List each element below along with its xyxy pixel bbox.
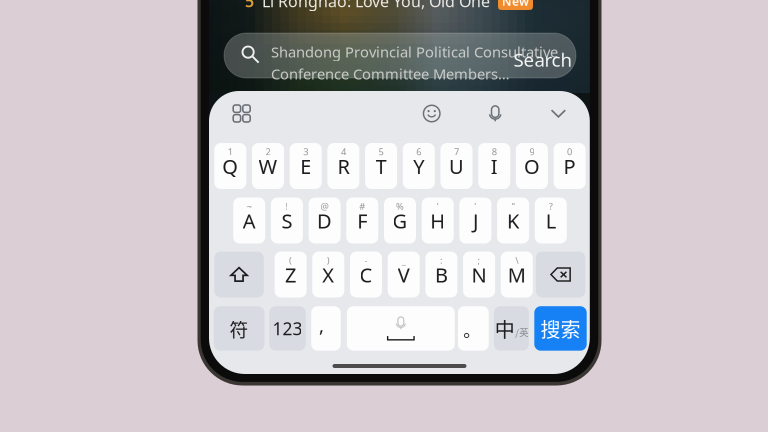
staticText: 2 — [265, 145, 270, 158]
button[interactable]: - — [350, 251, 382, 297]
button[interactable]: Space — [347, 306, 455, 351]
staticText: J — [473, 207, 478, 234]
staticText: ? — [549, 200, 553, 212]
staticText: _ — [402, 254, 406, 266]
staticText: G — [392, 207, 407, 234]
staticText: # — [359, 200, 365, 212]
button[interactable]: _ — [388, 251, 420, 297]
staticText: S — [281, 207, 292, 234]
staticText: C — [359, 261, 372, 288]
button[interactable]: 8 — [478, 143, 510, 189]
button[interactable]: 9 — [516, 143, 548, 189]
button[interactable]: ) — [312, 251, 344, 297]
staticText: Z — [285, 261, 296, 288]
button[interactable]: ~ — [233, 197, 265, 243]
button[interactable]: ‘ — [422, 197, 454, 243]
staticText: % — [396, 200, 404, 212]
staticText: 123 — [272, 317, 302, 340]
button[interactable]: % — [384, 197, 416, 243]
staticText: 5 — [245, 0, 254, 12]
staticText: 1 — [228, 145, 233, 158]
button[interactable]: 1 — [214, 143, 246, 189]
button[interactable]: “ — [497, 197, 529, 243]
button[interactable]: Hide keyboard — [543, 98, 573, 128]
staticText: ; — [478, 254, 481, 266]
staticText: A — [243, 207, 256, 234]
button[interactable]: Delete — [536, 251, 585, 297]
staticText: B — [435, 261, 448, 288]
staticText: Shandong Provincial Political Consultati… — [271, 42, 558, 61]
button[interactable]: 0 — [554, 143, 586, 189]
staticText: /英 — [515, 325, 528, 339]
button[interactable]: Numbers — [269, 306, 306, 351]
staticText: D — [317, 207, 332, 234]
staticText: 搜索 — [540, 314, 580, 343]
button[interactable]: ! — [271, 197, 303, 243]
button[interactable]: 4 — [327, 143, 359, 189]
button[interactable]: Chinese/English — [494, 306, 529, 351]
button[interactable]: ’ — [459, 197, 491, 243]
staticText: Search — [513, 47, 572, 72]
staticText: U — [449, 153, 464, 180]
staticText: P — [564, 153, 576, 180]
staticText: - — [364, 254, 367, 266]
staticText: V — [398, 261, 410, 288]
staticText: New — [502, 0, 529, 9]
staticText: 5 — [379, 145, 384, 158]
staticText: ( — [289, 254, 292, 266]
staticText: X — [322, 261, 334, 288]
staticText: @ — [321, 200, 329, 212]
staticText: ~ — [247, 200, 252, 212]
staticText: ) — [327, 254, 330, 266]
staticText: T — [376, 153, 387, 180]
staticText: ‘ — [437, 200, 439, 212]
staticText: Li Ronghao: Love You, Old One — [262, 0, 490, 12]
button[interactable]: Comma — [311, 306, 341, 351]
staticText: Conference Committee Members… — [271, 64, 510, 83]
staticText: , — [319, 313, 324, 338]
button[interactable]: \ — [501, 251, 533, 297]
staticText: 9 — [529, 145, 534, 158]
staticText: E — [300, 153, 311, 180]
button[interactable]: Period — [458, 306, 489, 351]
staticText: ! — [285, 200, 288, 212]
button[interactable]: : — [425, 251, 457, 297]
staticText: 3 — [303, 145, 308, 158]
staticText: 8 — [492, 145, 497, 158]
staticText: “ — [512, 200, 515, 212]
button[interactable]: Dictate — [480, 98, 510, 128]
staticText: N — [472, 261, 487, 288]
button[interactable]: 5 — [365, 143, 397, 189]
staticText: L — [546, 207, 556, 234]
staticText: 6 — [416, 145, 421, 158]
button[interactable]: Symbols — [214, 306, 264, 351]
staticText: : — [440, 254, 443, 266]
staticText: W — [258, 153, 277, 180]
staticText: O — [524, 153, 540, 180]
button[interactable]: Emoji — [417, 98, 447, 128]
staticText: 符 — [230, 315, 249, 342]
staticText: R — [337, 153, 349, 180]
button[interactable]: 6 — [403, 143, 435, 189]
button[interactable]: ? — [535, 197, 567, 243]
staticText: K — [507, 207, 519, 234]
staticText: \ — [515, 254, 518, 266]
button[interactable]: Shift — [214, 251, 264, 297]
staticText: H — [430, 207, 445, 234]
staticText: 。 — [463, 317, 480, 342]
button[interactable]: Search — [534, 306, 587, 351]
button[interactable]: # — [346, 197, 378, 243]
button[interactable]: @ — [309, 197, 341, 243]
button[interactable]: 7 — [440, 143, 472, 189]
staticText: 4 — [341, 145, 346, 158]
button[interactable]: Keyboard layouts — [227, 98, 257, 128]
button[interactable]: ( — [275, 251, 307, 297]
staticText: I — [491, 153, 498, 180]
button[interactable]: ; — [463, 251, 495, 297]
button[interactable]: 3 — [290, 143, 322, 189]
staticText: M — [508, 261, 526, 288]
staticText: ’ — [474, 200, 476, 212]
staticText: 0 — [567, 145, 572, 158]
staticText: F — [357, 207, 367, 234]
button[interactable]: 2 — [252, 143, 284, 189]
